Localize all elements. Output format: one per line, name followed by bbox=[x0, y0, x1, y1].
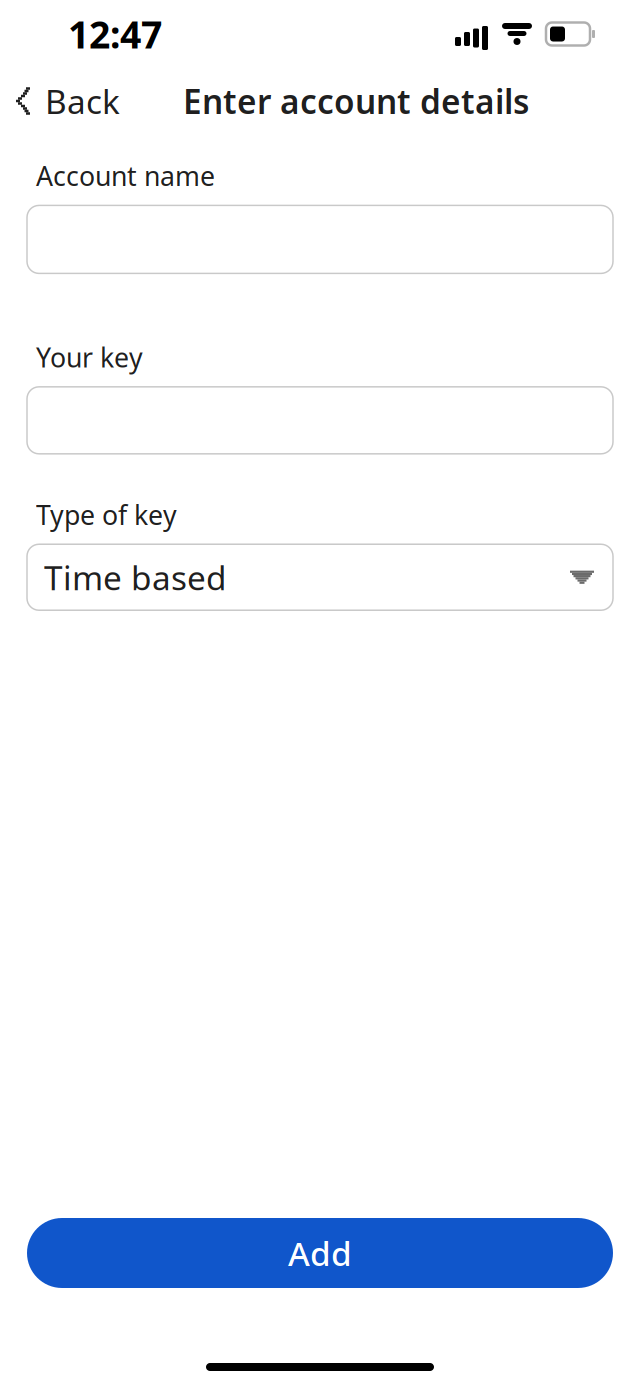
button[interactable] bbox=[27, 387, 613, 454]
button[interactable]: Time based bbox=[27, 544, 613, 610]
staticText: Time based bbox=[44, 555, 227, 599]
staticText: Your key bbox=[36, 339, 143, 375]
button[interactable]: Add bbox=[27, 1218, 613, 1288]
button[interactable]: Back bbox=[0, 70, 120, 132]
staticText: Account name bbox=[36, 158, 215, 193]
staticText: Back bbox=[45, 79, 120, 123]
staticText: Enter account details bbox=[183, 79, 529, 123]
staticText: 12:47 bbox=[68, 9, 162, 59]
staticText: Type of key bbox=[36, 497, 177, 532]
staticText: Add bbox=[288, 1231, 352, 1275]
button[interactable] bbox=[27, 205, 613, 273]
